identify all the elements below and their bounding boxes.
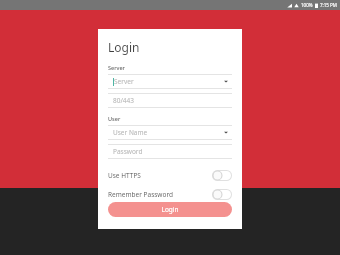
staticText: Password (113, 147, 143, 156)
staticText: Server (108, 64, 125, 71)
button[interactable]: Use HTTPS (108, 169, 232, 181)
button[interactable]: Server (108, 74, 232, 89)
staticText: Login (161, 205, 179, 214)
button[interactable]: Remember Password (108, 188, 232, 200)
staticText: Use HTTPS (108, 171, 141, 180)
staticText: 100% (301, 2, 313, 8)
other: Toggle (212, 189, 232, 200)
staticText: 7:15 PM (320, 2, 337, 8)
staticText: User (108, 115, 121, 122)
staticText: Remember Password (108, 190, 173, 199)
button[interactable]: Password (108, 144, 232, 159)
staticText: User Name (113, 128, 148, 137)
button[interactable]: Login (108, 202, 232, 217)
button[interactable]: User Name (108, 125, 232, 140)
other: Toggle (212, 170, 232, 181)
staticText: 80/443 (113, 96, 135, 105)
staticText: Login (108, 39, 140, 55)
staticText: Server (114, 77, 134, 86)
button[interactable]: 80/443 (108, 93, 232, 108)
